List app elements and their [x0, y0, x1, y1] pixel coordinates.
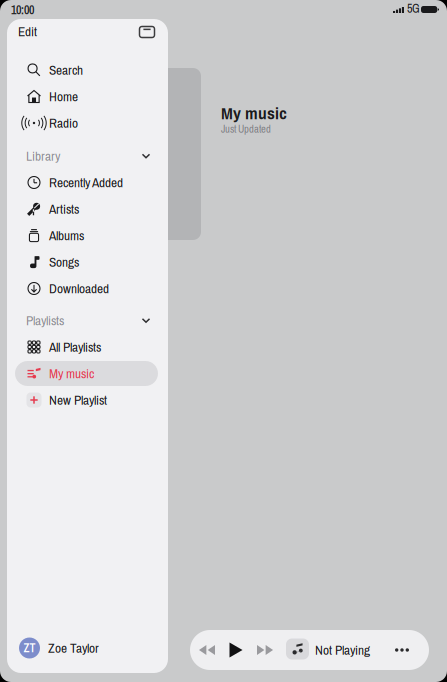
- staticText: Downloaded: [49, 279, 109, 297]
- button[interactable]: Songs: [15, 249, 158, 274]
- button[interactable]: Radio: [15, 110, 158, 135]
- button[interactable]: All Playlists: [15, 334, 158, 359]
- button[interactable]: Downloaded: [15, 276, 158, 301]
- staticText: New Playlist: [49, 391, 107, 409]
- staticText: Playlists: [26, 311, 64, 329]
- staticText: Albums: [49, 226, 84, 244]
- staticText: My music: [49, 364, 94, 382]
- staticText: My music: [221, 101, 287, 125]
- button[interactable]: Home: [15, 84, 158, 109]
- button[interactable]: Previous: [194, 637, 220, 663]
- button[interactable]: Next: [252, 637, 278, 663]
- staticText: Home: [49, 87, 78, 105]
- button[interactable]: Play: [223, 637, 249, 663]
- staticText: Songs: [49, 253, 79, 271]
- staticText: Not Playing: [315, 641, 370, 659]
- button[interactable]: Artists: [15, 196, 158, 221]
- staticText: Radio: [49, 114, 78, 132]
- staticText: Edit: [18, 22, 37, 40]
- button[interactable]: ZT: [15, 633, 158, 663]
- staticText: Artists: [49, 200, 79, 218]
- staticText: All Playlists: [49, 338, 101, 356]
- button[interactable]: My music: [15, 361, 158, 386]
- button[interactable]: Hide Sidebar: [135, 21, 159, 43]
- button[interactable]: Albums: [15, 223, 158, 248]
- staticText: 10:00: [11, 2, 34, 18]
- staticText: Zoe Taylor: [48, 639, 99, 657]
- button[interactable]: Collapse Playlists: [135, 310, 157, 330]
- button[interactable]: Collapse Library: [135, 146, 157, 166]
- staticText: Just Updated: [221, 122, 271, 136]
- button[interactable]: Search: [15, 57, 158, 82]
- staticText: 5G: [407, 0, 420, 17]
- button[interactable]: Edit: [18, 21, 54, 41]
- button[interactable]: More: [390, 638, 414, 662]
- staticText: Library: [26, 147, 60, 165]
- button[interactable]: New Playlist: [15, 387, 158, 412]
- staticText: Search: [49, 61, 83, 79]
- button[interactable]: Recently Added: [15, 170, 158, 195]
- staticText: Recently Added: [49, 173, 123, 191]
- staticText: ZT: [23, 640, 35, 656]
